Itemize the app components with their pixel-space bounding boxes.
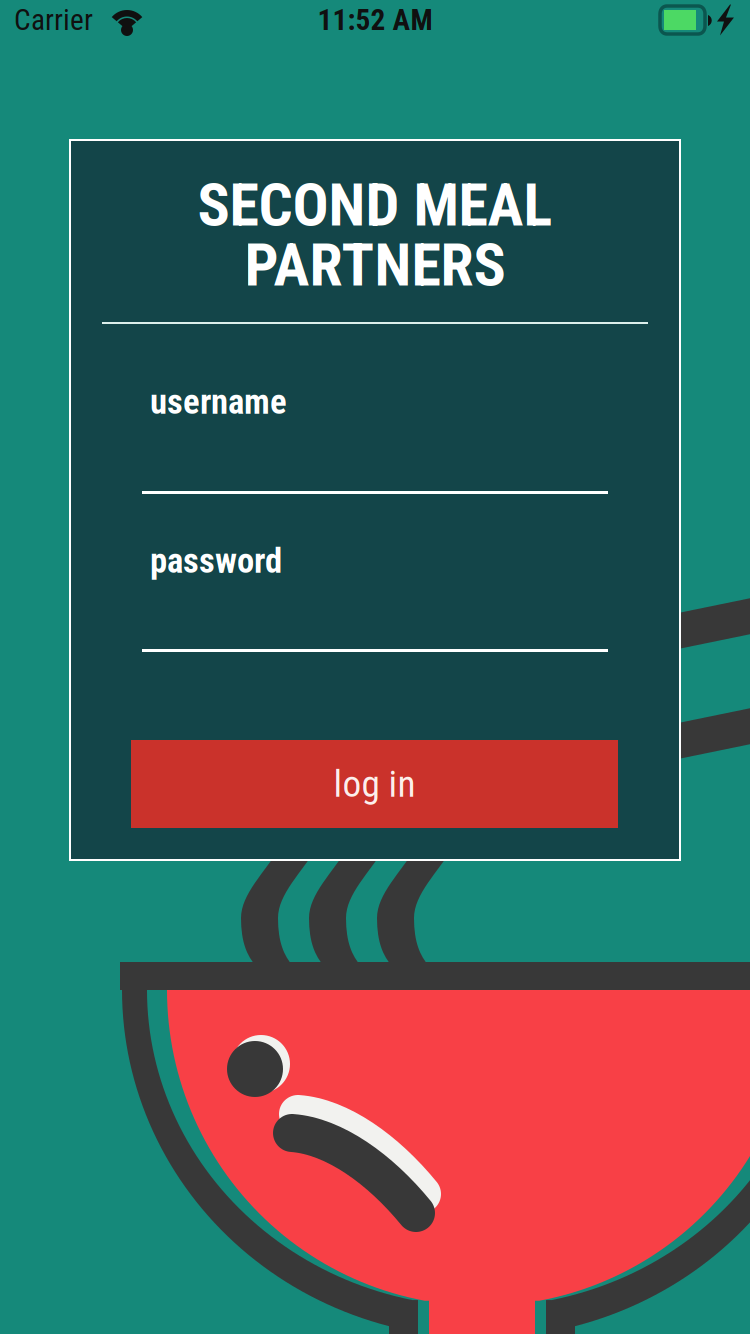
staticText: 11:52 AM — [317, 3, 432, 37]
staticText: username — [150, 382, 287, 422]
staticText: SECOND MEAL — [197, 170, 552, 240]
staticText: log in — [333, 762, 415, 806]
staticText: Carrier — [14, 3, 93, 37]
staticText: password — [150, 541, 282, 581]
staticText: PARTNERS — [244, 230, 505, 300]
button[interactable]: log in — [131, 740, 618, 828]
